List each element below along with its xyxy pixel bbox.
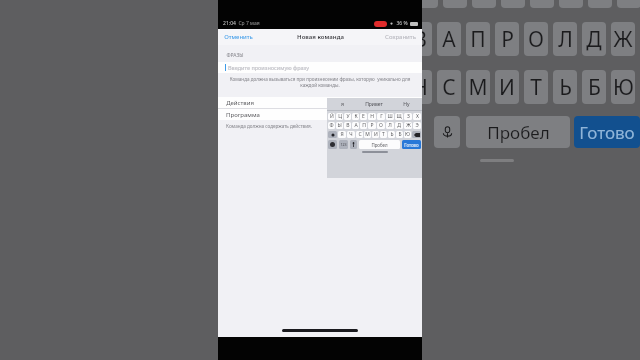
staticText: Ю bbox=[405, 131, 410, 138]
button[interactable]: Emoji bbox=[328, 140, 337, 149]
button[interactable]: Отменить bbox=[222, 31, 255, 43]
button[interactable]: Т bbox=[380, 131, 387, 138]
button[interactable]: П bbox=[360, 122, 367, 129]
button[interactable]: М bbox=[364, 131, 371, 138]
button[interactable]: В bbox=[344, 122, 351, 129]
staticText: я bbox=[341, 101, 344, 108]
staticText: Р bbox=[501, 25, 514, 54]
staticText: А bbox=[442, 25, 456, 54]
button[interactable]: З bbox=[404, 113, 412, 120]
button[interactable]: П bbox=[466, 22, 490, 56]
button[interactable] bbox=[328, 131, 337, 138]
button[interactable]: Э bbox=[413, 122, 421, 129]
button[interactable]: У bbox=[344, 113, 351, 120]
staticText: Г bbox=[380, 113, 383, 120]
button[interactable]: С bbox=[437, 70, 461, 104]
button[interactable]: Ш bbox=[386, 113, 394, 120]
staticText: Введите произносимую фразу bbox=[228, 64, 309, 71]
button[interactable]: я bbox=[327, 98, 358, 110]
button[interactable]: Л bbox=[553, 22, 577, 56]
button[interactable]: Готово bbox=[402, 140, 421, 149]
staticText: 123 bbox=[340, 142, 347, 147]
button[interactable]: Д bbox=[582, 22, 606, 56]
button[interactable]: Ж bbox=[611, 22, 635, 56]
staticText: Д bbox=[397, 122, 401, 129]
staticText: В bbox=[346, 122, 350, 129]
button[interactable]: Ну bbox=[390, 98, 422, 110]
staticText: Ср 7 мая bbox=[238, 20, 260, 27]
staticText: Готово bbox=[579, 121, 635, 144]
button[interactable]: Dictation bbox=[434, 116, 460, 148]
staticText: 21:04 bbox=[223, 20, 236, 27]
button[interactable]: Б bbox=[396, 131, 403, 138]
button[interactable]: И bbox=[495, 70, 519, 104]
staticText: Ф bbox=[329, 122, 334, 129]
button[interactable]: Щ bbox=[395, 113, 403, 120]
staticText: Д bbox=[586, 25, 602, 54]
staticText: С bbox=[358, 131, 362, 138]
staticText: Добавить действие bbox=[372, 100, 416, 106]
button[interactable]: А bbox=[352, 122, 359, 129]
button[interactable]: К bbox=[352, 113, 359, 120]
staticText: Ж bbox=[613, 25, 633, 54]
button[interactable]: Ч bbox=[347, 131, 355, 138]
staticText: Т bbox=[382, 131, 385, 138]
staticText: У bbox=[346, 113, 350, 120]
button[interactable]: Готово bbox=[574, 116, 640, 148]
button[interactable]: С bbox=[356, 131, 363, 138]
button[interactable]: Т bbox=[524, 70, 548, 104]
button[interactable]: Л bbox=[386, 122, 394, 129]
button[interactable]: М bbox=[466, 70, 490, 104]
button[interactable]: Пробел bbox=[466, 116, 570, 148]
button[interactable]: И bbox=[372, 131, 379, 138]
button[interactable]: Ф bbox=[328, 122, 335, 129]
button[interactable]: Е bbox=[360, 113, 367, 120]
staticText: Т bbox=[530, 73, 542, 102]
staticText: Новая команда bbox=[297, 33, 344, 41]
staticText: С bbox=[442, 73, 456, 102]
button[interactable]: Г bbox=[377, 113, 385, 120]
button[interactable]: Х bbox=[413, 113, 421, 120]
button[interactable]: А bbox=[437, 22, 461, 56]
button[interactable]: Й bbox=[328, 113, 335, 120]
button[interactable]: Ц bbox=[336, 113, 343, 120]
staticText: Н bbox=[370, 113, 374, 120]
button[interactable]: Р bbox=[495, 22, 519, 56]
button[interactable]: 123 bbox=[339, 140, 348, 149]
button[interactable]: Н bbox=[408, 70, 432, 104]
button[interactable]: Backspace bbox=[412, 131, 421, 138]
button[interactable]: Р bbox=[368, 122, 376, 129]
button[interactable]: Ь bbox=[553, 70, 577, 104]
button[interactable]: Dictation bbox=[350, 140, 357, 149]
staticText: Х bbox=[416, 113, 419, 120]
button[interactable]: Программа bbox=[218, 109, 422, 120]
button[interactable]: Я bbox=[338, 131, 346, 138]
staticText: Э bbox=[415, 122, 419, 129]
staticText: Пробел bbox=[371, 142, 388, 148]
staticText: П bbox=[470, 25, 486, 54]
button[interactable]: О bbox=[524, 22, 548, 56]
button[interactable]: Пробел bbox=[359, 140, 400, 149]
button[interactable]: В bbox=[408, 22, 432, 56]
staticText: Ы bbox=[337, 122, 342, 129]
button[interactable]: Ь bbox=[388, 131, 395, 138]
button[interactable]: Д bbox=[395, 122, 403, 129]
button[interactable]: Привет bbox=[358, 98, 390, 110]
button[interactable]: Введите произносимую фразу bbox=[218, 62, 422, 73]
button[interactable]: Сохранить bbox=[383, 31, 418, 43]
staticText: Р bbox=[370, 122, 374, 129]
button[interactable]: Ю bbox=[404, 131, 411, 138]
staticText: Программа bbox=[226, 111, 260, 119]
button[interactable]: Ы bbox=[336, 122, 343, 129]
staticText: Б bbox=[398, 131, 402, 138]
button[interactable]: Действия bbox=[218, 97, 422, 108]
button[interactable]: Б bbox=[582, 70, 606, 104]
staticText: Ч bbox=[349, 131, 353, 138]
button[interactable]: Н bbox=[368, 113, 376, 120]
button[interactable]: Ю bbox=[611, 70, 635, 104]
staticText: В bbox=[413, 25, 427, 54]
button[interactable]: О bbox=[377, 122, 385, 129]
staticText: К bbox=[354, 113, 358, 120]
staticText: Л bbox=[388, 122, 392, 129]
button[interactable]: Ж bbox=[404, 122, 412, 129]
